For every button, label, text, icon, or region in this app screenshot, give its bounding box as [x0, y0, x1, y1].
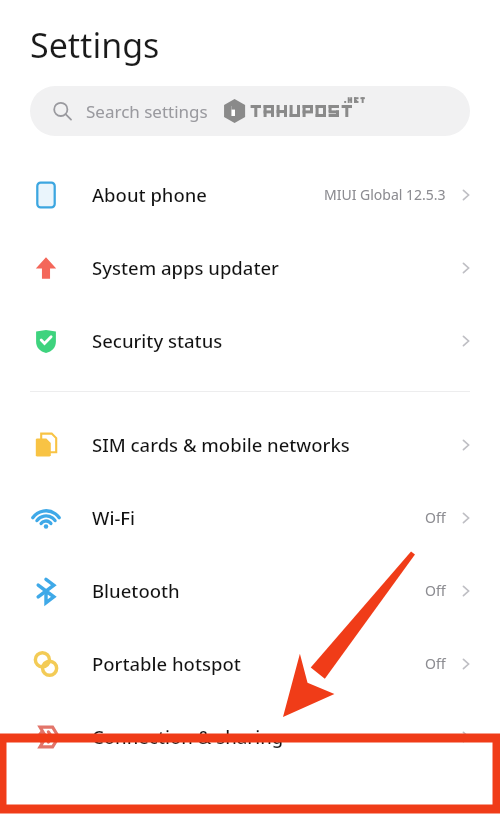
staticText: Off [425, 508, 446, 527]
staticText: About phone [92, 182, 207, 207]
staticText: Off [425, 654, 446, 673]
staticText: Security status [92, 328, 223, 353]
button[interactable]: Wi-Fi [0, 481, 500, 554]
button[interactable]: Search settings [30, 86, 470, 136]
staticText: MIUI Global 12.5.3 [324, 185, 446, 204]
staticText: Bluetooth [92, 578, 180, 603]
button[interactable]: Portable hotspot [0, 627, 500, 700]
staticText: Off [425, 581, 446, 600]
staticText: Settings [30, 22, 160, 68]
button[interactable]: SIM cards & mobile networks [0, 408, 500, 481]
staticText: Search settings [86, 100, 208, 123]
button[interactable]: Connection & sharing [0, 700, 500, 773]
staticText: Wi-Fi [92, 505, 136, 530]
button[interactable]: Bluetooth [0, 554, 500, 627]
button[interactable]: About phone [0, 158, 500, 231]
staticText: SIM cards & mobile networks [92, 432, 350, 457]
staticText: Portable hotspot [92, 651, 241, 676]
staticText: System apps updater [92, 255, 279, 280]
button[interactable]: Security status [0, 304, 500, 377]
button[interactable]: System apps updater [0, 231, 500, 304]
staticText: Connection & sharing [92, 724, 284, 749]
